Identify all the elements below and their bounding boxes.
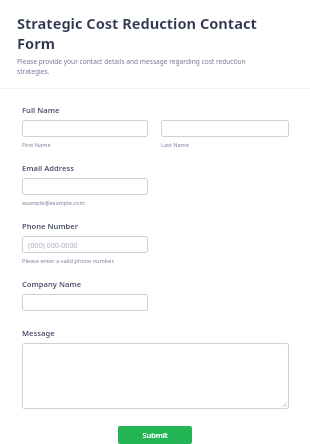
button[interactable]: Message <box>22 343 289 409</box>
staticText: Last Name <box>161 141 189 149</box>
button[interactable]: Phone Number <box>22 236 148 253</box>
staticText: First Name <box>22 141 51 149</box>
staticText: Please provide your contact details and … <box>17 57 276 76</box>
button[interactable]: Email Address <box>22 178 148 195</box>
button[interactable]: Last Name <box>161 120 289 137</box>
staticText: Please enter a valid phone number. <box>22 257 115 265</box>
staticText: Full Name <box>22 105 60 115</box>
button[interactable]: Company Name <box>22 294 148 311</box>
staticText: example@example.com <box>22 199 85 207</box>
staticText: Strategic Cost Reduction Contact Form <box>17 13 296 53</box>
staticText: Message <box>22 328 55 338</box>
button[interactable]: First Name <box>22 120 148 137</box>
staticText: Email Address <box>22 163 74 173</box>
staticText: Company Name <box>22 279 82 289</box>
staticText: Submit <box>142 430 168 440</box>
staticText: Phone Number <box>22 221 79 231</box>
staticText: (000) 000-0000 <box>28 240 78 250</box>
button[interactable]: Submit <box>118 426 192 444</box>
